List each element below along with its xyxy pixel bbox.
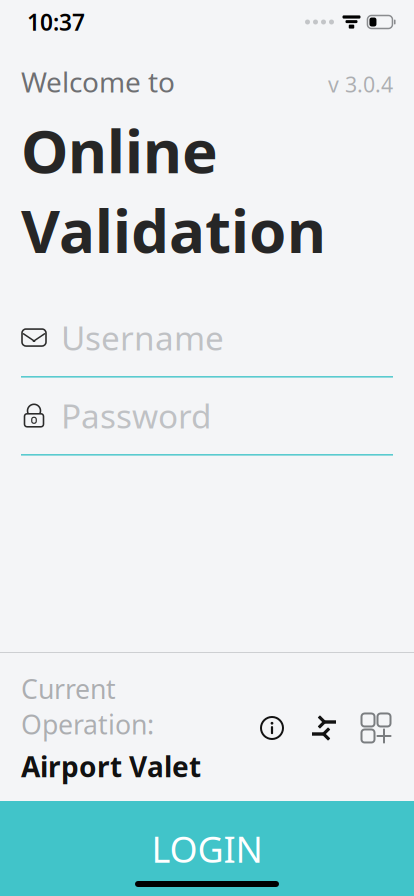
staticText: Welcome to [21,63,175,100]
button[interactable]: Switch operation [307,708,341,748]
staticText: Online Validation [21,110,326,270]
staticText: Airport Valet [21,748,201,785]
button[interactable]: Username [21,315,393,377]
button[interactable]: Password [21,393,393,455]
staticText: Password [61,393,212,438]
staticText: 10:37 [27,7,85,37]
staticText: LOGIN [151,825,262,873]
staticText: Username [61,315,224,360]
button[interactable]: Information [255,708,289,748]
button[interactable]: LOGIN [0,801,414,896]
button[interactable]: Add operation [359,708,393,748]
staticText: Current Operation: [21,671,154,742]
staticText: v 3.0.4 [328,70,393,98]
